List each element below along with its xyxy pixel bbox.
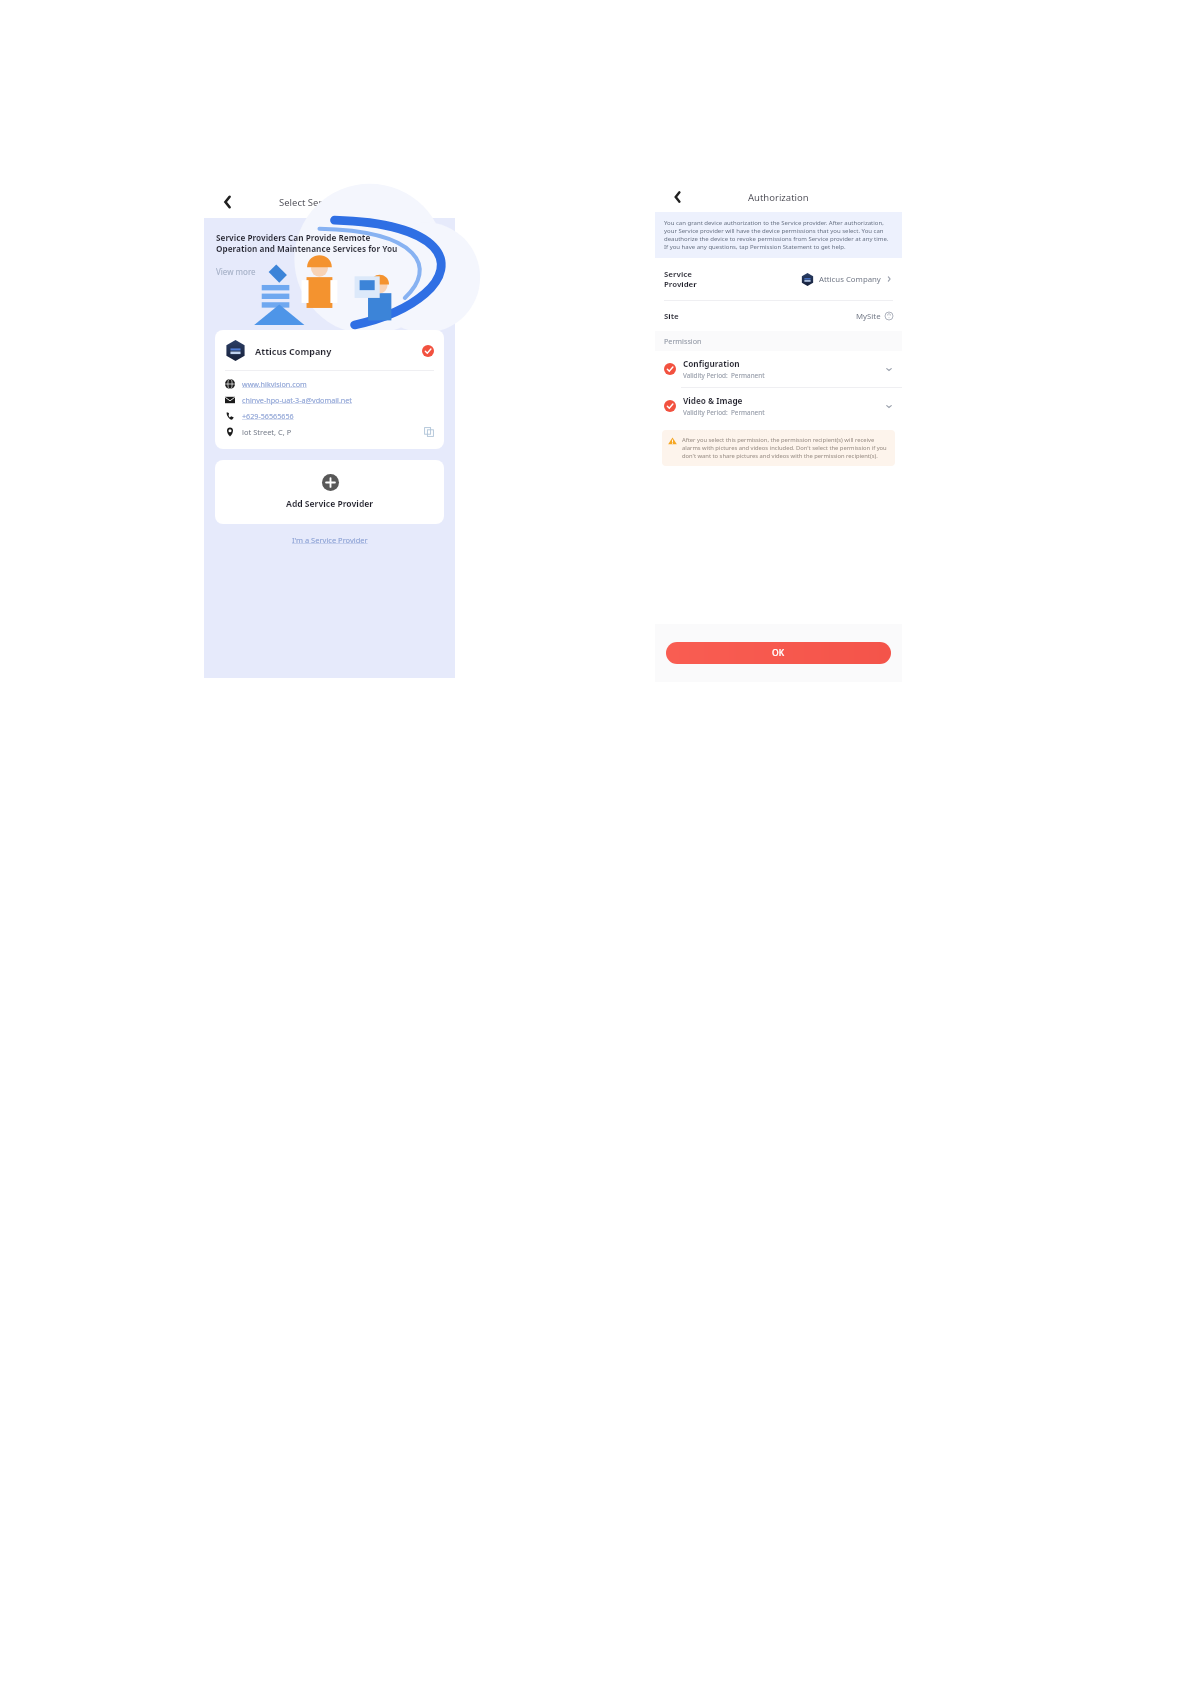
button[interactable]: Add Service Provider [215, 460, 444, 524]
staticText: MySite [856, 311, 881, 322]
staticText: lot Street, C, P [242, 427, 292, 437]
staticText: Authorization [748, 191, 809, 204]
staticText: Atticus Company [819, 274, 881, 285]
staticText: OK [772, 647, 785, 659]
staticText: Service Providers Can Provide Remote Ope… [216, 232, 398, 254]
button[interactable]: chinve-hpo-uat-3-a@vdomail.net [225, 395, 434, 405]
staticText: Validity Period: Permanent [683, 408, 765, 417]
staticText: www.hikvision.com [242, 379, 307, 389]
staticText: chinve-hpo-uat-3-a@vdomail.net [242, 395, 352, 405]
button[interactable]: Back [218, 192, 238, 212]
button[interactable]: View more [216, 266, 256, 277]
staticText: Service Provider [664, 269, 697, 289]
staticText: Add Service Provider [286, 498, 374, 510]
button[interactable]: I'm a Service Provider [292, 535, 368, 545]
staticText: Video & Image [683, 395, 743, 406]
button[interactable]: www.hikvision.com [225, 379, 434, 389]
button[interactable]: Service Provider [655, 258, 902, 300]
button[interactable]: Site [655, 301, 902, 331]
button[interactable]: +629-56565656 [225, 411, 434, 421]
staticText: Atticus Company [255, 345, 332, 357]
button[interactable]: Copy address [424, 427, 434, 437]
button[interactable]: Configuration [655, 351, 902, 387]
staticText: After you select this permission, the pe… [682, 436, 889, 460]
staticText: Site [664, 311, 679, 322]
button[interactable]: OK [666, 642, 891, 664]
button[interactable]: Back [669, 188, 687, 206]
staticText: Select Service Provider [279, 196, 380, 209]
staticText: Permission [664, 336, 702, 346]
staticText: Configuration [683, 358, 740, 369]
staticText: +629-56565656 [242, 411, 294, 421]
button[interactable]: Video & Image [655, 388, 902, 424]
staticText: You can grant device authorization to th… [664, 219, 893, 251]
button[interactable]: Atticus Company [215, 330, 444, 449]
staticText: Validity Period: Permanent [683, 371, 765, 380]
